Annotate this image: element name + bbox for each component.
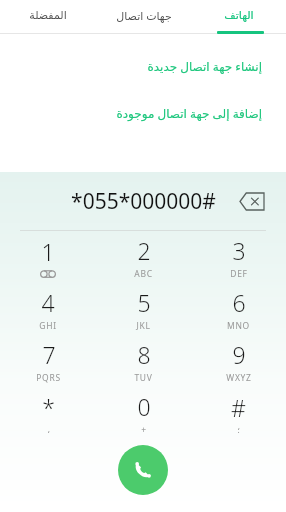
button[interactable]: 3 [191,231,286,283]
staticText: 5 [137,287,151,318]
staticText: PQRS [36,372,61,384]
staticText: 4 [41,287,55,318]
staticText: 6 [232,287,246,318]
button[interactable]: 5 [96,283,191,335]
staticText: 1 [41,236,55,267]
staticText: إضافة إلى جهة اتصال موجودة [116,105,262,121]
staticText: الهاتف [224,9,254,22]
staticText: المفضلة [29,9,67,22]
staticText: ؛ [237,425,241,435]
button[interactable]: 8 [96,335,191,387]
staticText: TUV [134,372,153,384]
staticText: * [42,392,55,423]
staticText: 9 [232,339,246,370]
button[interactable]: الهاتف [191,0,286,31]
button[interactable]: * [0,387,96,439]
button[interactable]: 0 [96,387,191,439]
staticText: ABC [134,268,153,280]
button[interactable]: Call [118,445,168,495]
staticText: DEF [230,268,248,280]
button[interactable]: 7 [0,335,96,387]
staticText: JKL [136,320,151,332]
button[interactable]: 2 [96,231,191,283]
button[interactable]: Backspace [234,183,270,219]
staticText: 2 [137,235,151,266]
button[interactable]: 4 [0,283,96,335]
staticText: 3 [232,235,246,266]
staticText: MNO [227,320,250,332]
staticText: # [231,392,246,423]
button[interactable]: 6 [191,283,286,335]
staticText: ، [47,425,51,435]
button[interactable]: 9 [191,335,286,387]
button[interactable]: جهات اتصال [96,0,191,31]
button[interactable]: المفضلة [0,0,96,31]
staticText: 0 [137,391,151,422]
staticText: 8 [137,339,151,370]
button[interactable]: إضافة إلى جهة اتصال موجودة [0,102,286,124]
staticText: WXYZ [226,372,252,384]
staticText: جهات اتصال [116,8,172,23]
button[interactable]: # [191,387,286,439]
button[interactable]: 1 [0,231,96,283]
staticText: + [141,424,147,436]
button[interactable]: إنشاء جهة اتصال جديدة [0,55,286,77]
staticText: *055*000000# [71,187,216,216]
staticText: إنشاء جهة اتصال جديدة [147,58,262,74]
staticText: 7 [42,339,56,370]
staticText: GHI [39,320,57,332]
